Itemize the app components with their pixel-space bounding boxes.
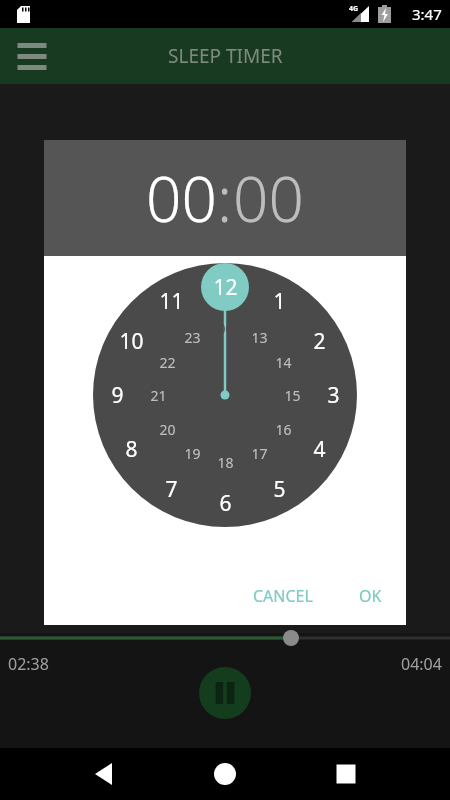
staticText: 21 [150,386,167,405]
staticText: 3 [327,381,340,410]
button[interactable]: Select hour [93,263,357,527]
button[interactable]: 00 [233,156,304,240]
button[interactable]: Back [80,750,128,798]
button[interactable]: 00 [146,156,217,240]
staticText: 5 [273,475,286,504]
button[interactable]: CANCEL [243,577,323,615]
staticText: 12 [213,273,238,302]
staticText: 02:38 [8,653,49,675]
staticText: 7 [165,475,178,504]
staticText: 4 [313,435,326,464]
staticText: 19 [184,444,201,463]
staticText: 10 [119,327,144,356]
staticText: SLEEP TIMER [168,43,283,69]
button[interactable]: OK [349,577,392,615]
button[interactable]: Pause [199,667,251,719]
staticText: 1 [273,287,286,316]
staticText: 4G [349,4,359,14]
staticText: 14 [275,353,292,372]
staticText: 17 [251,444,268,463]
staticText: 22 [159,353,176,372]
button[interactable]: Open navigation menu [8,32,56,80]
staticText: 6 [219,489,232,518]
staticText: 15 [284,386,301,405]
button[interactable]: Recent apps [322,750,370,798]
staticText: : [217,156,233,240]
staticText: 18 [217,453,234,472]
staticText: 11 [159,287,184,316]
staticText: 23 [184,328,201,347]
button[interactable]: Home [201,750,249,798]
staticText: CANCEL [253,585,313,607]
staticText: 3:47 [412,4,442,24]
staticText: 2 [313,327,326,356]
staticText: 13 [251,328,268,347]
staticText: 04:04 [401,653,442,675]
staticText: 16 [275,420,292,439]
staticText: 8 [125,435,138,464]
staticText: 00 [217,319,234,338]
staticText: 9 [111,381,124,410]
staticText: OK [359,585,382,607]
staticText: 20 [159,420,176,439]
